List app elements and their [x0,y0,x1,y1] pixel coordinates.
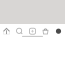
button[interactable]: Profile [55,28,62,35]
button[interactable]: Search [16,28,23,35]
button[interactable]: Create [29,28,36,35]
button[interactable]: Home [3,28,10,35]
button[interactable]: Shop [42,28,49,35]
